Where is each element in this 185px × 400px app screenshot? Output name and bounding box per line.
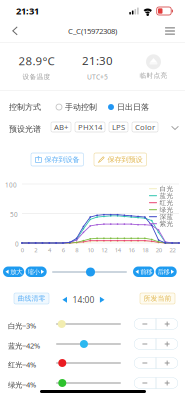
staticText: 6: [62, 246, 65, 254]
staticText: 绿光~4%: [8, 379, 36, 390]
staticText: 蓝光: [159, 191, 173, 200]
staticText: 28.9°C: [18, 53, 54, 69]
staticText: 20: [156, 246, 162, 254]
button[interactable]: PHX14: [75, 122, 105, 132]
staticText: 50: [10, 210, 18, 219]
button[interactable]: 后移: [155, 266, 177, 277]
staticText: 所发当前: [143, 294, 171, 303]
staticText: 14: [115, 246, 121, 254]
staticText: 22: [169, 246, 175, 254]
button[interactable]: Increase: [156, 357, 178, 368]
button[interactable]: AB+: [51, 122, 71, 132]
button[interactable]: Increase: [156, 338, 178, 349]
staticText: 16: [128, 246, 134, 254]
button[interactable]: LPS: [109, 122, 128, 132]
button[interactable]: 临时点亮: [123, 54, 183, 80]
staticText: 控制方式: [9, 102, 41, 112]
staticText: 0: [21, 246, 24, 254]
staticText: C_C(15972308): [68, 26, 117, 36]
staticText: 放大: [10, 268, 22, 276]
button[interactable]: Back: [4, 21, 26, 41]
button[interactable]: 保存到设备: [31, 153, 83, 166]
staticText: 保存到设备: [44, 155, 79, 164]
staticText: 21:31: [16, 5, 39, 17]
button[interactable]: 手动控制: [56, 102, 97, 112]
button[interactable]: Decrease: [134, 338, 156, 349]
button[interactable]: Increase: [156, 318, 178, 329]
staticText: Color: [135, 122, 155, 132]
staticText: AB+: [54, 122, 68, 132]
staticText: 100: [5, 181, 17, 189]
staticText: 设备温度: [22, 73, 50, 81]
staticText: 临时点亮: [139, 71, 167, 80]
staticText: 预设光谱: [9, 124, 41, 134]
staticText: 白光~3%: [8, 320, 36, 331]
staticText: 18: [142, 246, 148, 254]
staticText: 紫光: [159, 219, 173, 228]
staticText: 12: [101, 246, 107, 254]
staticText: 8: [75, 246, 78, 254]
staticText: 蓝光~42%: [8, 340, 40, 351]
staticText: 缩小: [27, 268, 39, 276]
button[interactable]: Decrease: [134, 377, 156, 388]
button[interactable]: 保存到预设: [94, 153, 146, 166]
staticText: 后移: [157, 268, 169, 276]
staticText: 绿光: [159, 205, 173, 214]
staticText: 14:00: [72, 294, 94, 306]
staticText: 手动控制: [65, 102, 97, 112]
button[interactable]: Color: [132, 122, 158, 132]
staticText: 2: [34, 246, 37, 254]
button[interactable]: 所发当前: [140, 293, 175, 304]
staticText: 4: [48, 246, 51, 254]
staticText: 日出日落: [117, 102, 149, 112]
button[interactable]: 前移: [133, 266, 154, 277]
staticText: 21:30: [82, 53, 113, 68]
button[interactable]: Next hour: [99, 297, 105, 303]
button[interactable]: Decrease: [134, 357, 156, 368]
button[interactable]: Increase: [156, 377, 178, 388]
button[interactable]: Decrease: [134, 318, 156, 329]
staticText: 0: [15, 240, 19, 248]
button[interactable]: 曲线清零: [14, 293, 49, 304]
staticText: 10: [88, 246, 94, 254]
button[interactable]: 日出日落: [108, 102, 149, 112]
staticText: UTC+5: [87, 72, 108, 81]
staticText: 白光: [159, 184, 173, 193]
staticText: 红光~4%: [8, 359, 36, 370]
button[interactable]: 缩小: [25, 266, 47, 277]
button[interactable]: Menu: [159, 21, 181, 41]
staticText: PHX14: [78, 122, 102, 132]
staticText: 曲线清零: [17, 294, 45, 303]
button[interactable]: Previous hour: [62, 297, 67, 303]
staticText: 深蓝: [159, 212, 173, 221]
button[interactable]: More presets: [169, 122, 181, 134]
staticText: LPS: [112, 122, 125, 132]
staticText: 红光: [159, 198, 173, 207]
button[interactable]: 放大: [3, 266, 24, 277]
staticText: 保存到预设: [107, 155, 142, 164]
staticText: 前移: [140, 268, 152, 276]
